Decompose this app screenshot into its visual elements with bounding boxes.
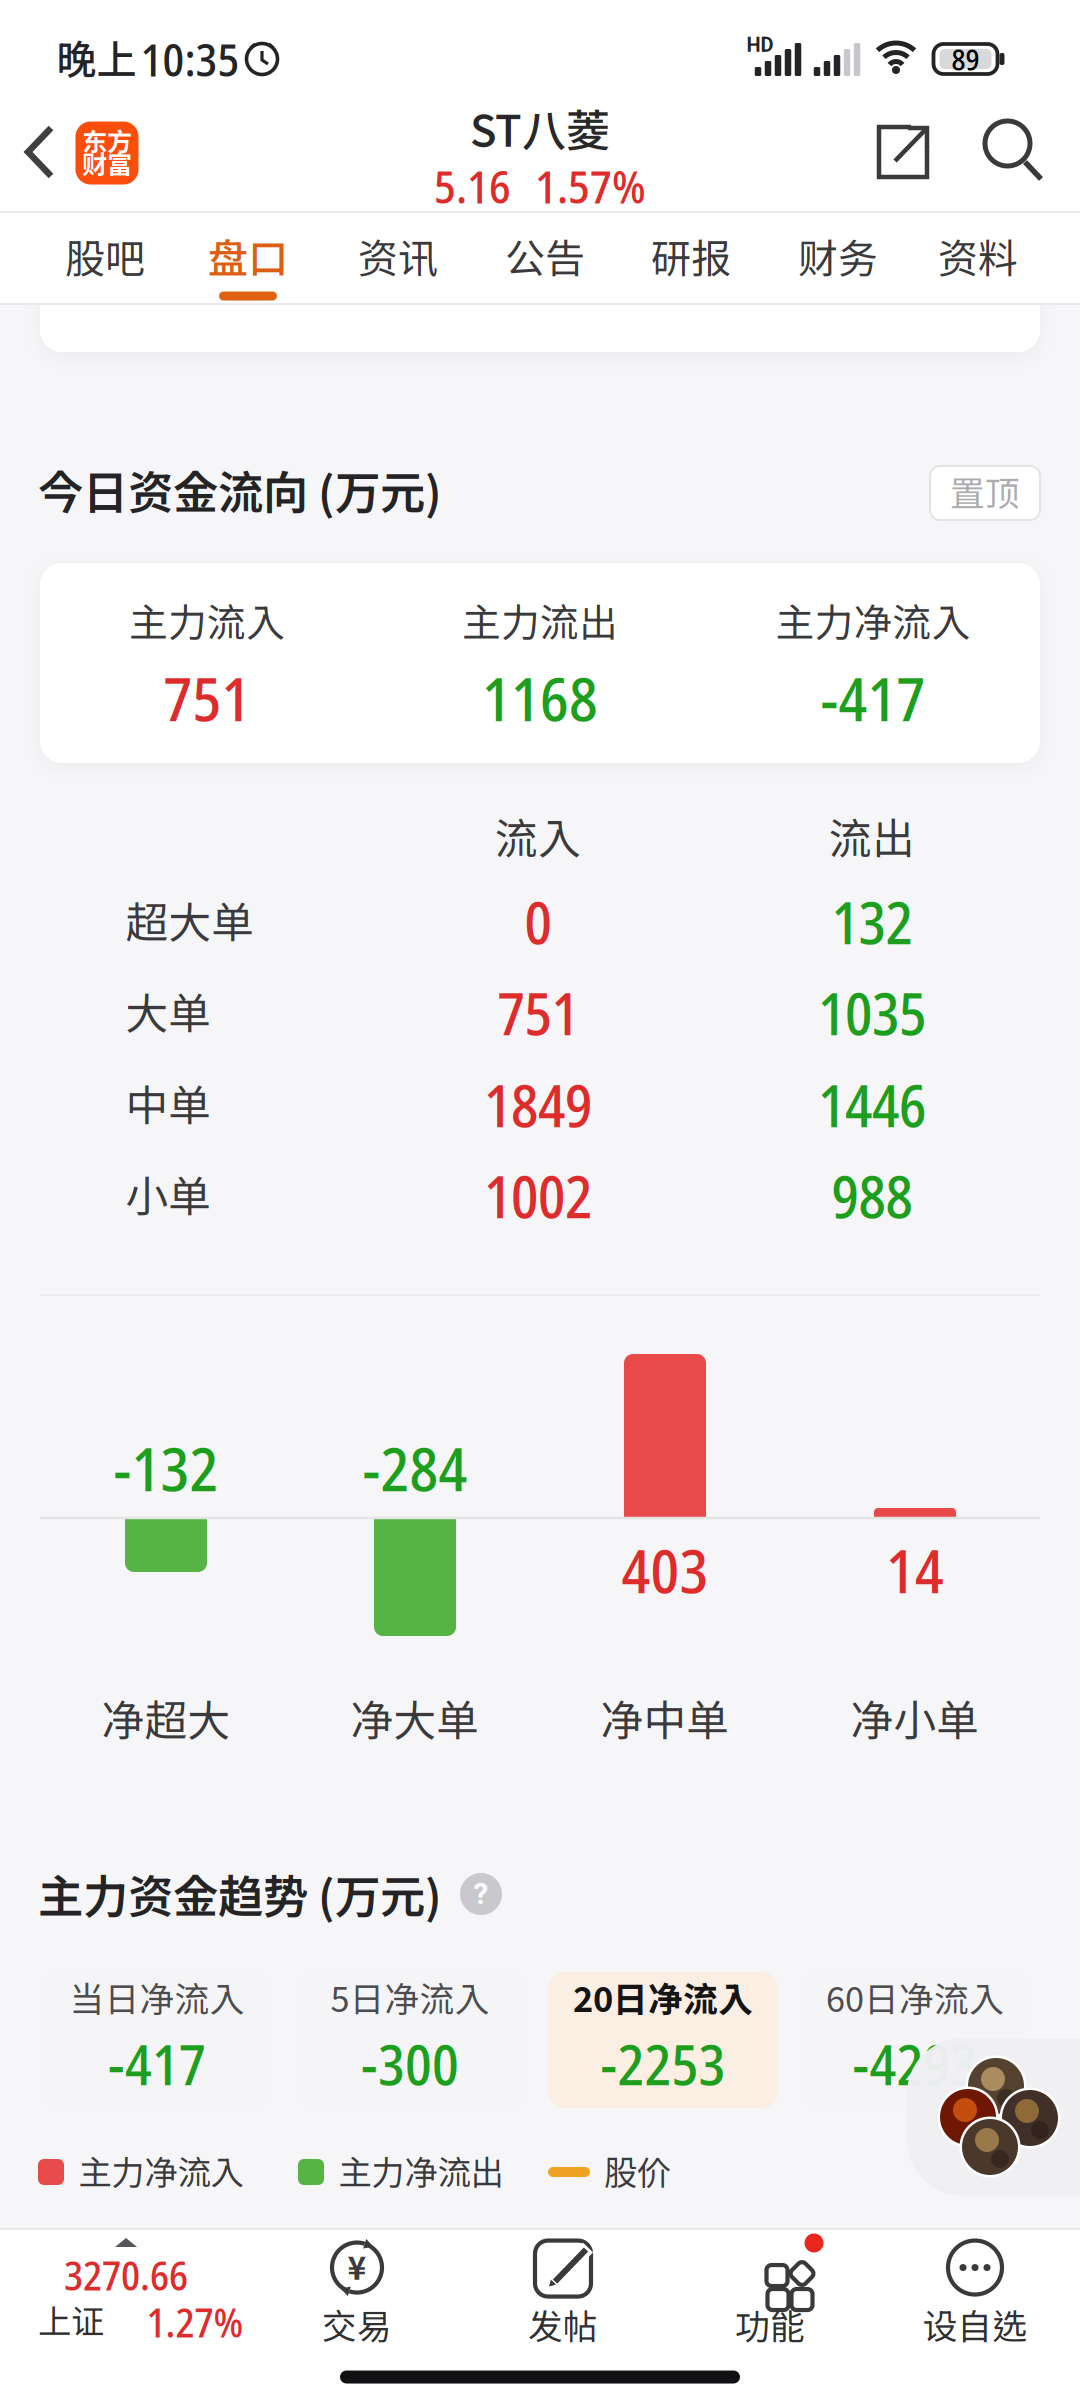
staticText: 股吧 <box>65 234 145 282</box>
staticText: 公告 <box>505 234 585 282</box>
staticText: 上证 <box>38 2301 104 2341</box>
button[interactable]: 当日净流入 <box>42 1972 272 2108</box>
staticText: 东方 <box>82 127 132 156</box>
staticText: 1.27% <box>146 2295 243 2349</box>
staticText: 交易 <box>322 2305 392 2346</box>
staticText: 流出 <box>829 813 915 863</box>
button[interactable]: ¥ <box>267 2232 447 2352</box>
button[interactable]: 置顶 <box>930 466 1040 520</box>
staticText: 主力流入 <box>129 599 285 645</box>
staticText: 研报 <box>651 234 731 282</box>
staticText: -284 <box>362 1427 467 1509</box>
staticText: 5日净流入 <box>330 1978 489 2019</box>
staticText: 5.16 <box>434 155 511 217</box>
staticText: 设自选 <box>922 2305 1027 2346</box>
button[interactable]: 20日净流入 <box>548 1972 778 2108</box>
staticText: 89 <box>951 39 979 79</box>
staticText: 主力净流入 <box>775 599 970 645</box>
staticText: HD <box>746 33 773 57</box>
staticText: 置顶 <box>950 472 1020 513</box>
staticText: 财富 <box>82 149 132 179</box>
button[interactable]: 帮助 <box>460 1873 502 1915</box>
staticText: 10:35 <box>140 28 239 90</box>
staticText: 功能 <box>735 2305 805 2346</box>
staticText: 0 <box>524 883 551 961</box>
staticText: -417 <box>108 2025 206 2102</box>
button[interactable]: 资讯 <box>333 213 463 303</box>
staticText: 1849 <box>484 1066 592 1144</box>
button[interactable]: 功能 <box>680 2232 860 2352</box>
staticText: 988 <box>831 1157 912 1235</box>
staticText: 大单 <box>125 988 211 1038</box>
staticText: -2253 <box>600 2025 725 2102</box>
button[interactable]: 财务 <box>773 213 903 303</box>
staticText: 1446 <box>818 1066 926 1144</box>
button[interactable]: 股吧 <box>40 213 170 303</box>
staticText: ST八菱 <box>470 104 610 156</box>
staticText: 751 <box>497 974 578 1052</box>
staticText: 净超大 <box>101 1695 230 1745</box>
staticText: 流入 <box>495 813 581 863</box>
staticText: 751 <box>163 657 250 739</box>
button[interactable]: 研报 <box>626 213 756 303</box>
staticText: 今日资金流向 (万元) <box>38 465 442 519</box>
staticText: 资料 <box>938 234 1018 282</box>
staticText: 主力流出 <box>462 599 618 645</box>
staticText: ? <box>473 1877 488 1911</box>
staticText: -4293 <box>852 2025 977 2102</box>
staticText: 净小单 <box>850 1695 979 1745</box>
staticText: 资讯 <box>358 234 438 282</box>
button[interactable]: 5日净流入 <box>295 1972 525 2108</box>
staticText: 主力净流入 <box>78 2152 243 2192</box>
button[interactable]: 公告 <box>480 213 610 303</box>
staticText: 1035 <box>818 974 926 1052</box>
button[interactable]: 小游戏 <box>907 2038 1080 2195</box>
button[interactable]: 东方财富 <box>75 121 138 184</box>
staticText: ¥ <box>347 2249 366 2286</box>
button[interactable]: 返回 <box>19 122 59 182</box>
staticText: 1168 <box>482 657 598 739</box>
staticText: 净中单 <box>600 1695 729 1745</box>
staticText: 盘口 <box>208 234 288 282</box>
staticText: 超大单 <box>125 897 254 947</box>
staticText: 财务 <box>798 234 878 282</box>
staticText: 晚上 <box>56 35 136 83</box>
staticText: 主力净流出 <box>338 2152 503 2192</box>
button[interactable]: 资料 <box>913 213 1043 303</box>
button[interactable]: 盘口 <box>183 213 313 303</box>
button[interactable]: 分享 <box>875 125 929 179</box>
button[interactable]: 发帖 <box>473 2232 653 2352</box>
staticText: 132 <box>831 883 912 961</box>
button[interactable]: 搜索 <box>985 121 1045 183</box>
staticText: 1002 <box>484 1157 592 1235</box>
staticText: -417 <box>820 657 925 739</box>
staticText: -132 <box>113 1427 218 1509</box>
staticText: 小单 <box>125 1171 211 1221</box>
button[interactable]: 设自选 <box>885 2232 1065 2352</box>
staticText: 主力资金趋势 (万元) <box>38 1869 442 1923</box>
button[interactable]: 上证指数 <box>20 2235 260 2347</box>
staticText: 股价 <box>604 2152 670 2192</box>
staticText: 403 <box>621 1529 708 1611</box>
staticText: 3270.66 <box>64 2248 188 2302</box>
staticText: 中单 <box>125 1080 211 1130</box>
staticText: 20日净流入 <box>573 1978 753 2019</box>
staticText: 净大单 <box>350 1695 479 1745</box>
staticText: 发帖 <box>528 2305 598 2346</box>
staticText: 当日净流入 <box>69 1978 244 2019</box>
staticText: 1.57% <box>535 155 646 217</box>
staticText: 60日净流入 <box>826 1978 1004 2019</box>
button[interactable]: 60日净流入 <box>800 1972 1030 2108</box>
staticText: 14 <box>886 1529 944 1611</box>
staticText: -300 <box>361 2025 459 2102</box>
